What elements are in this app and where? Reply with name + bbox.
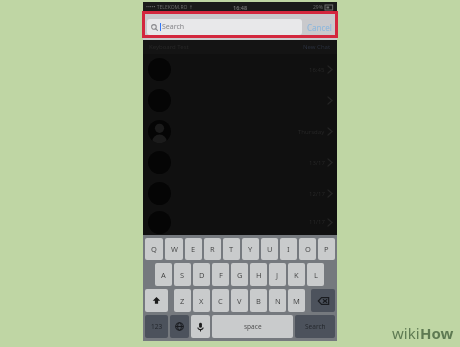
staticText: Z [180,296,185,306]
staticText: I [287,244,290,254]
staticText: U [267,244,273,254]
staticText: How [420,323,454,343]
staticText: T [229,244,234,254]
button[interactable]: O [299,238,316,260]
staticText: X [199,296,204,306]
button[interactable]: N [269,289,286,312]
button[interactable]: B [250,289,267,312]
button[interactable]: Thursday [143,116,337,147]
staticText: 11/17 [309,218,325,226]
button[interactable]: Z [174,289,191,312]
button[interactable]: J [269,263,286,286]
button[interactable]: R [204,238,221,260]
staticText: 12/17 [309,190,325,198]
button[interactable]: A [155,263,172,286]
button[interactable]: L [307,263,324,286]
staticText: Search [162,22,185,32]
button[interactable]: Search [295,315,335,338]
button[interactable]: 123 [145,315,168,338]
staticText: 29% [313,4,323,11]
button[interactable]: Backspace [311,289,335,312]
button[interactable]: Cancel [306,22,333,33]
button[interactable]: X [193,289,210,312]
staticText: A [161,270,166,280]
staticText: M [293,296,300,306]
button[interactable]: W [165,238,183,260]
button[interactable]: Voice input [191,315,210,338]
button[interactable]: Shift [145,289,168,312]
button[interactable]: D [193,263,210,286]
staticText: S [180,270,185,280]
staticText: E [191,244,196,254]
button[interactable]: G [231,263,248,286]
staticText: F [219,270,223,280]
staticText: ••••• TELEKOM.RO ↑ [146,4,193,11]
staticText: D [199,270,205,280]
staticText: space [244,322,262,331]
staticText: K [294,270,299,280]
staticText: Q [151,244,157,254]
button[interactable]: U [261,238,278,260]
staticText: W [171,244,178,254]
button[interactable]: S [174,263,191,286]
staticText: Keyboard Test [149,43,189,51]
staticText: wiki [392,323,420,343]
staticText: New Chat [303,43,331,51]
staticText: J [276,270,279,280]
staticText: Search [305,322,326,331]
button[interactable]: Search [147,19,302,35]
staticText: G [237,270,243,280]
button[interactable]: Q [145,238,163,260]
button[interactable]: C [212,289,229,312]
button[interactable]: Y [242,238,259,260]
button[interactable]: M [288,289,305,312]
button[interactable]: K [288,263,305,286]
button[interactable]: T [223,238,240,260]
button[interactable]: I [280,238,297,260]
staticText: L [314,270,318,280]
button[interactable]: 11/17 [143,209,337,235]
staticText: R [210,244,215,254]
staticText: C [218,296,223,306]
staticText: Cancel [307,22,332,33]
staticText: P [324,244,329,254]
staticText: H [256,270,262,280]
button[interactable]: V [231,289,248,312]
staticText: 16:48 [233,4,248,11]
staticText: Y [248,244,253,254]
staticText: V [237,296,242,306]
staticText: O [305,244,311,254]
staticText: 13/17 [309,159,325,167]
staticText: N [275,296,281,306]
button[interactable]: E [185,238,202,260]
staticText: 16:45 [309,66,325,74]
button[interactable]: Switch keyboard language [170,315,189,338]
button[interactable]: P [318,238,335,260]
button[interactable]: F [212,263,229,286]
button[interactable]: H [250,263,267,286]
staticText: B [256,296,261,306]
staticText: Thursday [298,128,325,136]
staticText: 123 [151,322,163,331]
button[interactable]: space [212,315,293,338]
